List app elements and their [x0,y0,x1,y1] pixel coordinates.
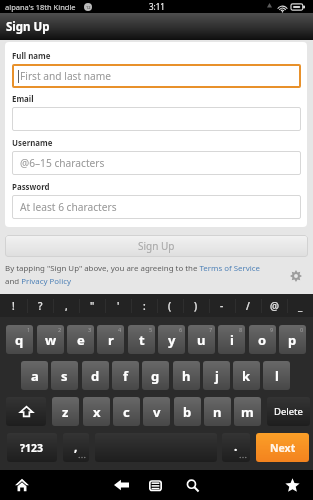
staticText: Sign Up [6,19,50,35]
button[interactable]: Favorites [283,470,302,500]
button[interactable]: : [131,294,157,317]
staticText: r [108,331,114,349]
button[interactable]: f [112,361,139,390]
button[interactable]: j [203,361,230,390]
staticText: p [288,331,297,349]
button[interactable]: b [174,397,201,426]
button[interactable] [6,397,46,426]
staticText: k [242,367,251,385]
button[interactable]: k [233,361,260,390]
button[interactable]: / [235,294,261,317]
staticText: h [182,367,191,385]
staticText: ? [38,299,43,313]
button[interactable]: . [222,433,250,462]
staticText: : [143,299,146,313]
staticText: q [15,331,24,349]
button[interactable]: v [143,397,170,426]
button[interactable]: w [37,325,64,354]
button[interactable]: t [128,325,155,354]
staticText: n [213,403,222,421]
button[interactable]: Back [112,470,131,500]
staticText: e [77,331,85,349]
button[interactable]: At least 6 characters [12,195,301,219]
button[interactable]: c [113,397,140,426]
button[interactable]: l [263,361,290,390]
button[interactable]: x [83,397,110,426]
button[interactable]: Menu [146,470,165,500]
button[interactable]: ) [183,294,209,317]
staticText: Full name [12,51,51,62]
staticText: 7 [209,326,213,333]
button[interactable]: - [209,294,235,317]
staticText: alpana's 18th Kindle [5,2,76,12]
button[interactable]: @6–15 characters [12,151,301,175]
button[interactable]: y [158,325,185,354]
button[interactable]: m [234,397,261,426]
staticText: z [62,403,69,421]
staticText: 4 [118,326,122,333]
staticText: 3 [88,326,92,333]
button[interactable]: ? [27,294,53,317]
staticText: By tapping "Sign Up" above, you are agre… [5,263,261,286]
button[interactable]: e [67,325,94,354]
button[interactable]: ( [157,294,183,317]
staticText: a [31,367,39,385]
button[interactable]: First and last name [12,64,301,88]
staticText: First and last name [20,69,112,83]
staticText: ' [117,299,120,313]
button[interactable]: , [63,433,89,462]
button[interactable]: , [53,294,79,317]
button[interactable]: ' [105,294,131,317]
button[interactable] [95,433,217,462]
staticText: ! [12,299,15,313]
button[interactable]: Delete [267,397,310,426]
staticText: 5 [149,326,153,333]
button[interactable]: @ [261,294,287,317]
button[interactable] [12,107,301,131]
staticText: ) [194,299,198,313]
button[interactable]: Search [183,470,202,500]
button[interactable]: " [79,294,105,317]
staticText: At least 6 characters [20,200,117,214]
button[interactable]: ?123 [7,433,57,462]
staticText: / [246,299,250,313]
button[interactable]: _ [287,294,313,317]
staticText: b [183,403,192,421]
staticText: Next [270,441,296,455]
button[interactable]: i [218,325,245,354]
button[interactable]: r [97,325,124,354]
staticText: u [197,331,206,349]
staticText: 2 [58,326,62,333]
button[interactable]: q [6,325,33,354]
button[interactable]: s [51,361,78,390]
button[interactable]: Home [12,470,31,500]
button[interactable]: h [173,361,200,390]
button[interactable]: Sign Up [5,235,308,257]
button[interactable]: d [82,361,109,390]
staticText: ( [168,299,172,313]
staticText: @ [270,299,279,313]
staticText: Delete [274,405,303,418]
button[interactable]: Settings [288,268,304,284]
staticText: c [123,403,130,421]
button[interactable]: o [249,325,276,354]
staticText: j [215,367,219,385]
staticText: 8 [239,326,243,333]
button[interactable]: g [142,361,169,390]
staticText: 1 [27,326,31,333]
button[interactable]: p [279,325,306,354]
staticText: Sign Up [138,239,175,253]
staticText: Password [12,182,50,193]
button[interactable]: a [21,361,48,390]
button[interactable]: z [52,397,79,426]
staticText: t [139,331,145,349]
button[interactable]: u [188,325,215,354]
button[interactable]: n [204,397,231,426]
staticText: Username [12,138,53,149]
staticText: @6–15 characters [20,156,105,170]
staticText: v [153,403,161,421]
staticText: 9 [270,326,274,333]
button[interactable]: ! [0,294,27,317]
button[interactable]: Next [256,433,309,462]
staticText: , [74,438,78,454]
